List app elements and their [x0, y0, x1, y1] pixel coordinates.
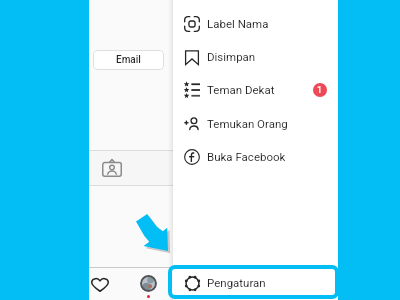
button[interactable]: Profile [137, 271, 160, 294]
staticText: 1 [317, 85, 323, 96]
staticText: Buka Facebook [207, 150, 286, 163]
button[interactable]: Temukan Orang [173, 107, 338, 140]
button[interactable]: Email [93, 50, 164, 70]
button[interactable]: Pengaturan [172, 269, 335, 295]
button[interactable]: Buka Facebook [173, 140, 338, 173]
staticText: Pengaturan [207, 276, 266, 289]
button[interactable]: Nametag tab [89, 151, 338, 185]
button[interactable]: Label Nama [173, 7, 338, 40]
button[interactable]: Disimpan [173, 40, 338, 73]
staticText: Label Nama [207, 17, 269, 30]
button[interactable]: Teman Dekat [173, 73, 338, 106]
staticText: Teman Dekat [207, 83, 275, 96]
button[interactable]: Activity [89, 272, 111, 294]
staticText: Disimpan [207, 50, 256, 63]
staticText: Temukan Orang [207, 117, 288, 130]
staticText: Email [116, 54, 141, 66]
